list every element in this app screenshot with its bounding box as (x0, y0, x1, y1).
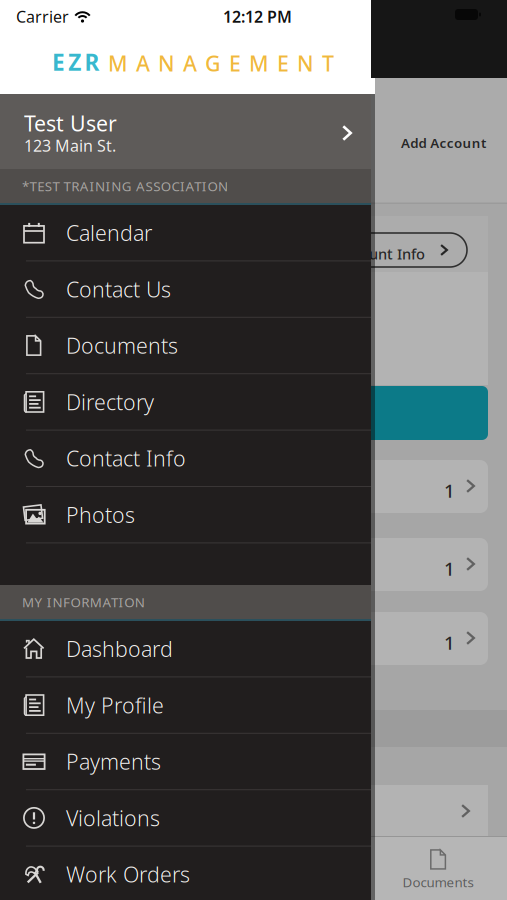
button[interactable]: More (0, 785, 488, 836)
staticText: A (136, 49, 150, 77)
staticText: Work Orders (66, 860, 190, 888)
button[interactable]: Documents (393, 842, 483, 898)
staticText: E (229, 49, 241, 77)
staticText: Documents (66, 331, 178, 360)
button[interactable]: Test User (0, 94, 371, 169)
button[interactable]: Violations (0, 790, 371, 847)
button[interactable]: Item (18, 460, 488, 513)
staticText: R (84, 47, 99, 77)
button[interactable]: Work Orders (0, 847, 371, 900)
button[interactable]: Contact Info (0, 431, 371, 487)
staticText: E (277, 49, 289, 77)
staticText: E (52, 47, 65, 77)
staticText: G (205, 49, 221, 77)
staticText: N (297, 49, 314, 77)
staticText: Directory (66, 388, 154, 416)
staticText: Dashboard (66, 634, 173, 663)
staticText: Contact Us (66, 275, 171, 303)
staticText: M (249, 49, 269, 77)
staticText: N (158, 49, 175, 77)
staticText: 1 (444, 556, 455, 581)
staticText: My Profile (66, 691, 164, 719)
staticText: Calendar (66, 218, 152, 247)
button[interactable]: My Profile (0, 677, 371, 734)
staticText: A (183, 49, 197, 77)
staticText: Add Account (401, 134, 486, 152)
button[interactable]: Photos (0, 487, 371, 543)
staticText: MY INFORMATION (22, 593, 145, 611)
button[interactable]: Account Info (250, 233, 467, 267)
staticText: 1 (444, 478, 455, 503)
staticText: Payments (66, 747, 161, 776)
button[interactable]: Documents (0, 318, 371, 374)
staticText: Account Info (336, 244, 425, 263)
staticText: *TEST TRAINING ASSOCIATION (22, 177, 228, 195)
button[interactable]: Directory (0, 374, 371, 431)
staticText: 1 (444, 630, 455, 655)
button[interactable]: Dashboard (0, 621, 371, 677)
staticText: Violations (66, 804, 160, 832)
staticText: 12:12 PM (223, 6, 292, 27)
staticText: Documents (402, 873, 473, 891)
staticText: Contact Info (66, 444, 186, 472)
button[interactable]: Contact Us (0, 261, 371, 318)
button[interactable]: Calendar (0, 205, 371, 261)
button[interactable]: Item (18, 612, 488, 665)
staticText: Z (68, 47, 81, 77)
staticText: T (322, 49, 334, 77)
staticText: Carrier (16, 6, 69, 27)
staticText: Test User (24, 109, 117, 137)
staticText: 123 Main St. (24, 135, 116, 156)
staticText: M (108, 49, 128, 77)
button[interactable]: Add Account (0, 0, 85, 18)
button[interactable]: Item (18, 538, 488, 591)
button[interactable]: Payments (0, 734, 371, 790)
staticText: Photos (66, 500, 135, 529)
